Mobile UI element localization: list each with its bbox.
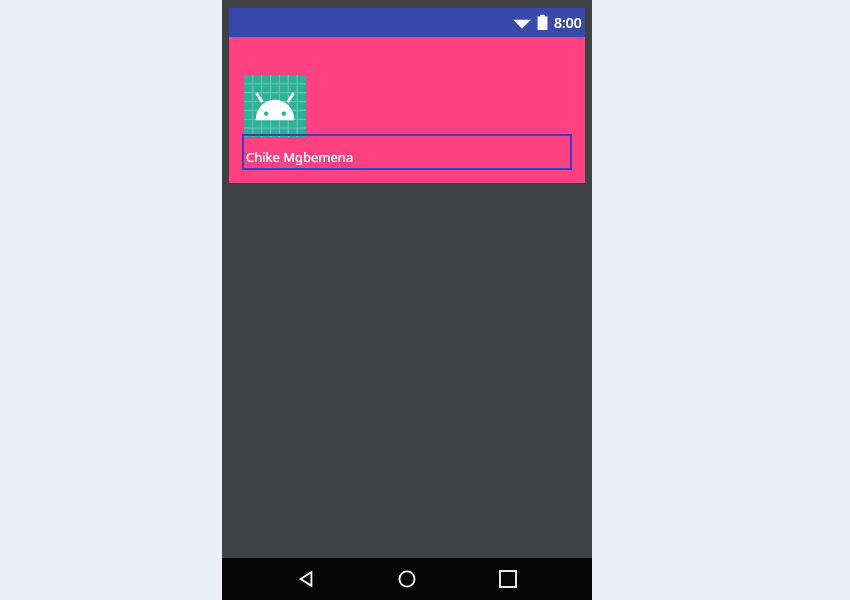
button[interactable]: Home bbox=[383, 558, 431, 600]
staticText: 8:00 bbox=[554, 13, 582, 32]
button[interactable]: Recent apps bbox=[484, 558, 532, 600]
button[interactable]: Back bbox=[282, 558, 330, 600]
staticText: Chike Mgbemena bbox=[246, 148, 354, 166]
button[interactable]: App icon bbox=[244, 75, 306, 137]
button[interactable]: Chike Mgbemena bbox=[243, 135, 571, 169]
